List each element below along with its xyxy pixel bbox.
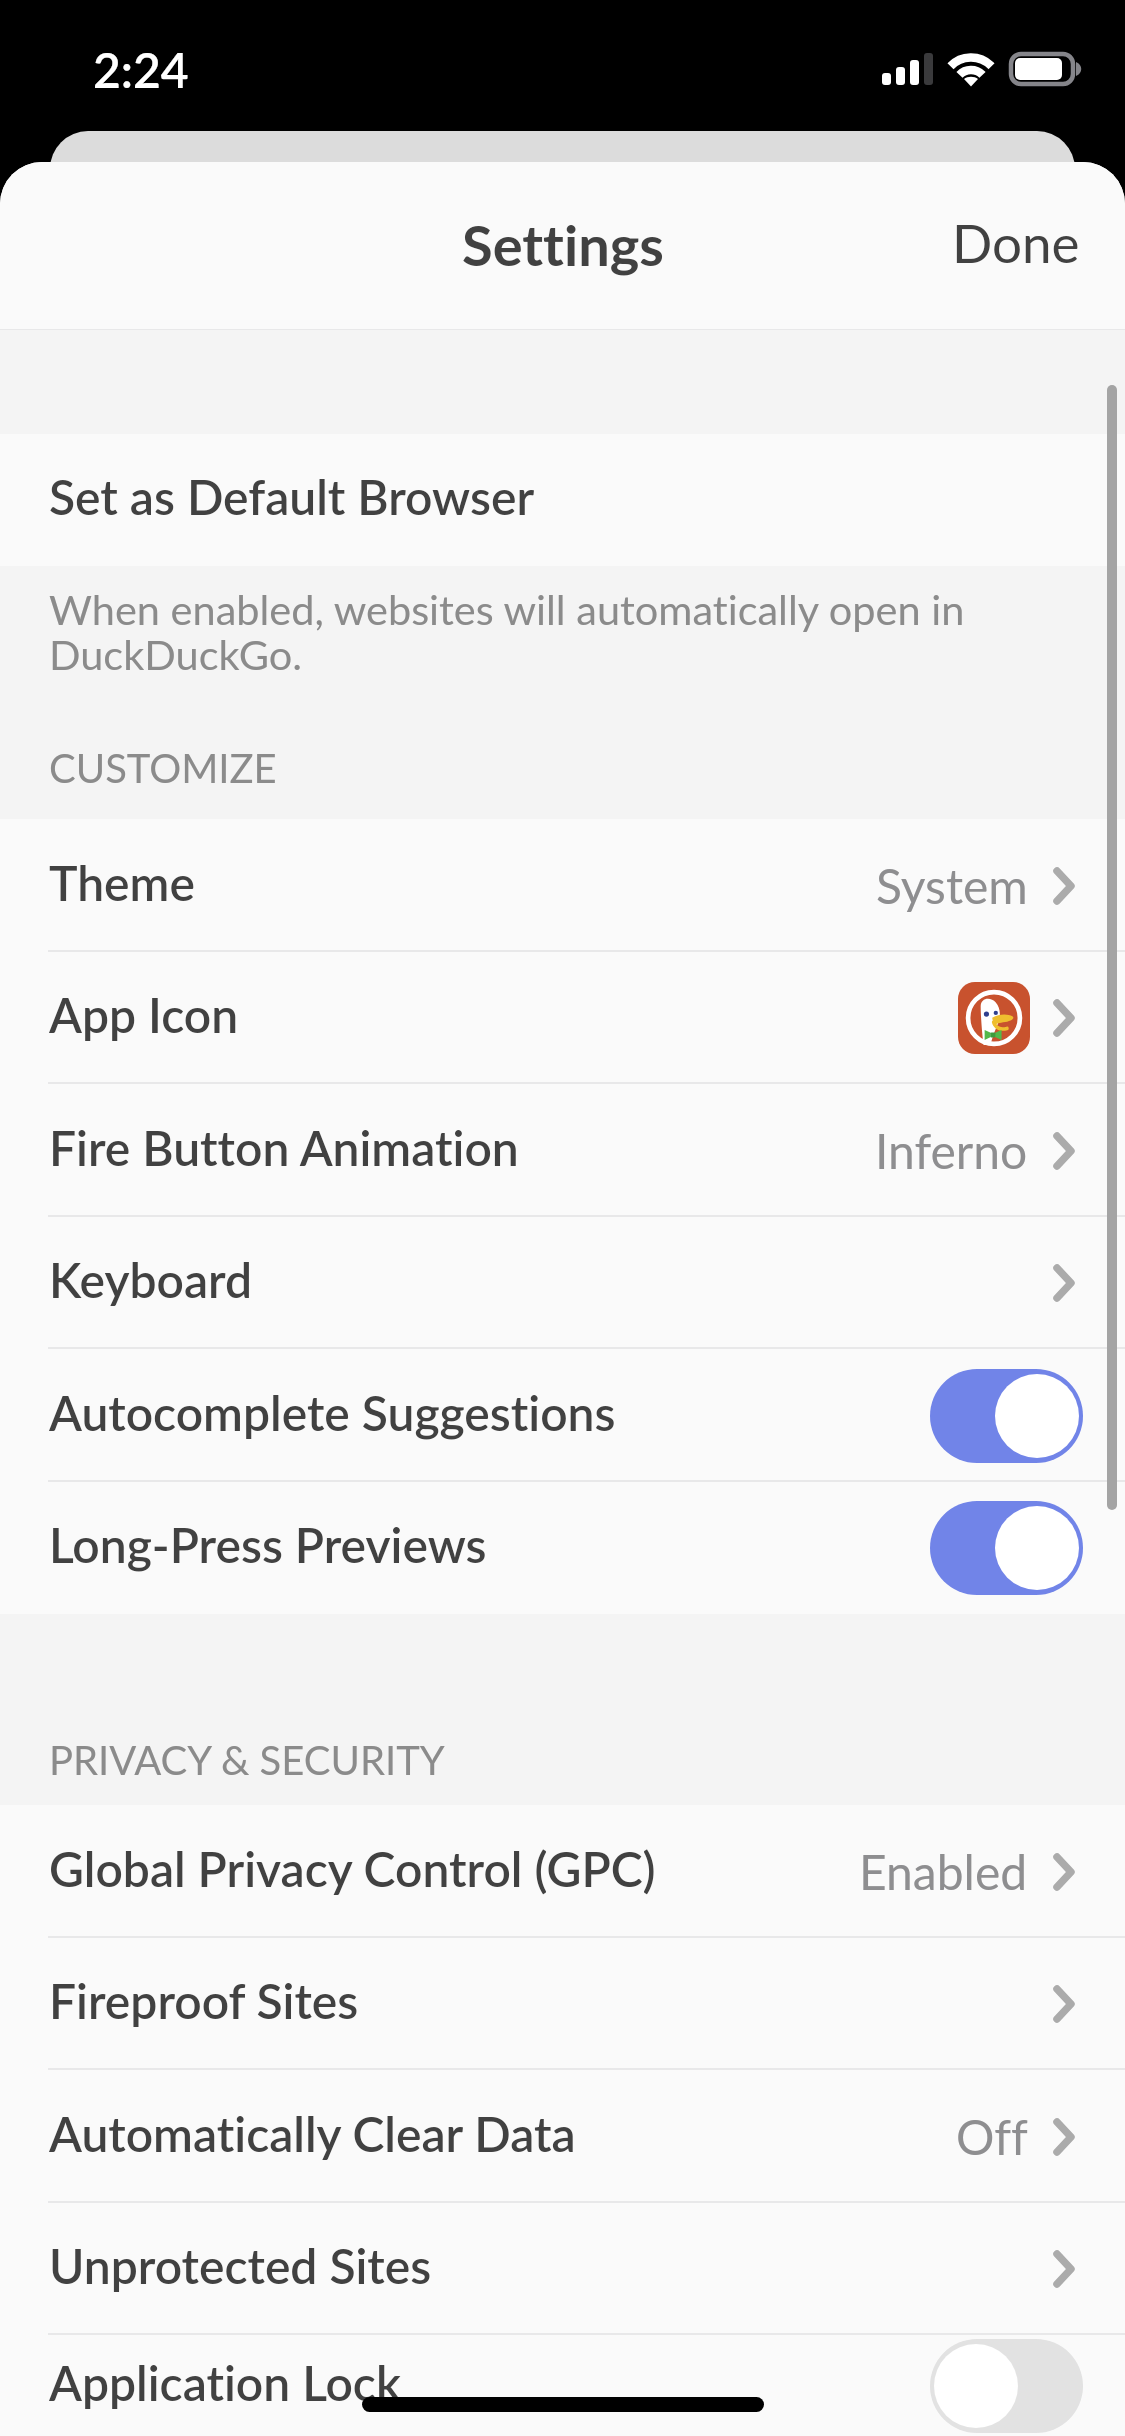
staticText: 2:24 bbox=[93, 41, 189, 99]
button[interactable]: Toggle on bbox=[930, 1369, 1083, 1463]
button[interactable]: Fireproof Sites bbox=[0, 1938, 1125, 2070]
staticText: System bbox=[876, 857, 1028, 915]
staticText: Off bbox=[956, 2108, 1028, 2166]
button[interactable]: Automatically Clear Data bbox=[0, 2070, 1125, 2203]
button[interactable]: Keyboard bbox=[0, 1217, 1125, 1349]
button[interactable]: Autocomplete Suggestions bbox=[0, 1349, 1125, 1482]
staticText: When enabled, websites will automaticall… bbox=[49, 584, 965, 679]
staticText: Inferno bbox=[875, 1122, 1028, 1180]
button[interactable]: App Icon bbox=[0, 952, 1125, 1084]
button[interactable]: Done bbox=[903, 195, 1125, 291]
staticText: PRIVACY & SECURITY bbox=[49, 1736, 445, 1784]
staticText: Fire Button Animation bbox=[49, 1119, 519, 1177]
staticText: Fireproof Sites bbox=[49, 1972, 359, 2030]
staticText: Automatically Clear Data bbox=[49, 2105, 576, 2163]
button[interactable]: Application Lock bbox=[0, 2335, 1125, 2436]
button[interactable]: Long-Press Previews bbox=[0, 1482, 1125, 1614]
staticText: Application Lock bbox=[49, 2354, 401, 2412]
staticText: CUSTOMIZE bbox=[49, 744, 277, 792]
button[interactable]: Unprotected Sites bbox=[0, 2203, 1125, 2335]
staticText: App Icon bbox=[49, 986, 239, 1044]
button[interactable]: Toggle on bbox=[930, 1501, 1083, 1595]
button[interactable]: Fire Button Animation bbox=[0, 1084, 1125, 1217]
button[interactable]: Theme bbox=[0, 819, 1125, 952]
staticText: Long-Press Previews bbox=[49, 1516, 487, 1574]
staticText: Autocomplete Suggestions bbox=[49, 1384, 616, 1442]
staticText: Unprotected Sites bbox=[49, 2237, 432, 2295]
staticText: Theme bbox=[49, 854, 195, 912]
button[interactable]: Toggle off bbox=[930, 2339, 1083, 2433]
staticText: Settings bbox=[462, 211, 664, 278]
staticText: Enabled bbox=[859, 1843, 1028, 1901]
staticText: Set as Default Browser bbox=[49, 468, 535, 526]
button[interactable]: Set as Default Browser bbox=[0, 434, 1125, 566]
staticText: Global Privacy Control (GPC) bbox=[49, 1840, 656, 1898]
staticText: Keyboard bbox=[49, 1251, 253, 1309]
staticText: Done bbox=[952, 211, 1080, 275]
button[interactable]: Global Privacy Control (GPC) bbox=[0, 1805, 1125, 1938]
